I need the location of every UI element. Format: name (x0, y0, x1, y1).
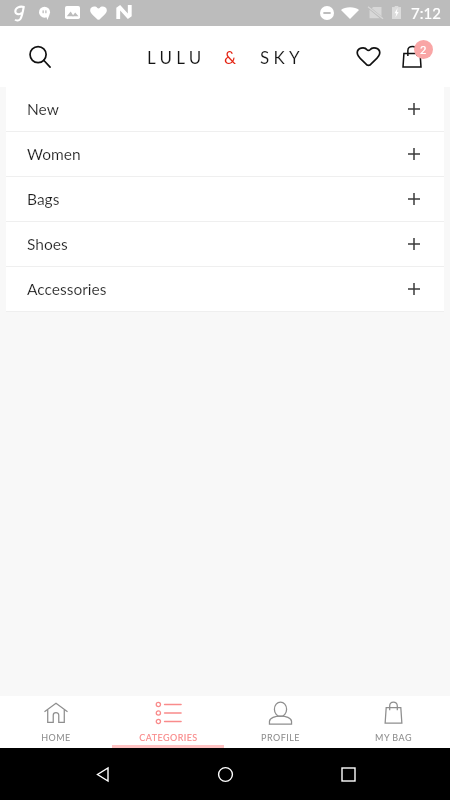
button[interactable]: MY BAG (337, 696, 450, 748)
staticText: SKY (260, 47, 304, 67)
staticText: Accessories (27, 280, 107, 299)
staticText: MY BAG (375, 732, 412, 743)
button[interactable]: Accessories (6, 267, 444, 311)
staticText: Women (27, 145, 81, 164)
button[interactable]: CATEGORIES (112, 696, 224, 748)
staticText: HOME (41, 732, 71, 743)
button[interactable]: Bags (6, 177, 444, 221)
staticText: PROFILE (261, 732, 300, 743)
button[interactable]: Home (205, 754, 245, 794)
button[interactable]: Back (83, 754, 123, 794)
staticText: 7:12 (411, 4, 441, 22)
button[interactable]: Shoes (6, 222, 444, 266)
button[interactable]: Shopping bag (394, 38, 430, 78)
button[interactable]: Wishlist (350, 39, 386, 75)
button[interactable]: Women (6, 132, 444, 176)
staticText: LULU (147, 47, 206, 67)
button[interactable]: PROFILE (224, 696, 337, 748)
staticText: Bags (27, 190, 60, 209)
button[interactable]: Recent apps (328, 754, 368, 794)
staticText: Shoes (27, 235, 68, 254)
staticText: New (27, 100, 59, 119)
staticText: CATEGORIES (139, 732, 198, 743)
button[interactable]: New (6, 87, 444, 131)
button[interactable]: Search (22, 39, 58, 75)
button[interactable]: HOME (0, 696, 112, 748)
staticText: & (224, 47, 237, 67)
staticText: 2 (420, 43, 427, 56)
